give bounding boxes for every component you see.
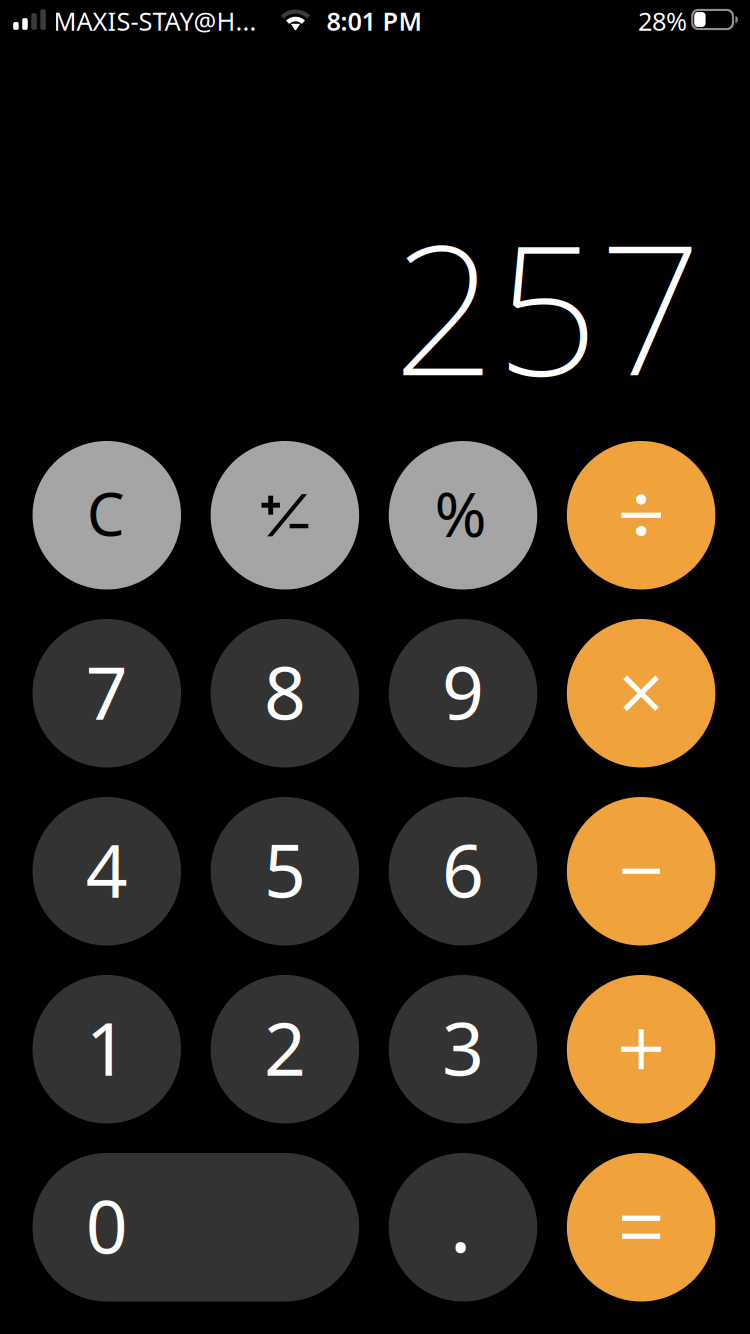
button[interactable]: 3 — [389, 975, 537, 1123]
staticText: . — [449, 1165, 471, 1275]
staticText: 9 — [442, 643, 484, 740]
button[interactable]: 8 — [211, 619, 359, 767]
button[interactable]: Minus — [567, 797, 715, 945]
button[interactable]: 0 — [32, 1153, 359, 1301]
staticText: 7 — [86, 643, 128, 740]
button[interactable]: 5 — [211, 797, 359, 945]
button[interactable]: 2 — [211, 975, 359, 1123]
button[interactable]: C — [33, 441, 181, 589]
button[interactable]: Multiply — [567, 619, 715, 767]
button[interactable]: Plus Minus — [211, 441, 359, 589]
staticText: 5 — [264, 821, 306, 918]
staticText: 8 — [264, 643, 306, 740]
button[interactable]: 6 — [389, 797, 537, 945]
staticText: 4 — [86, 821, 128, 918]
button[interactable]: . — [389, 1153, 537, 1301]
button[interactable]: Equals — [567, 1153, 715, 1301]
staticText: % — [434, 471, 486, 554]
button[interactable]: Plus — [567, 975, 715, 1123]
staticText: 6 — [442, 821, 484, 918]
staticText: 2 — [264, 999, 306, 1096]
staticText: 8:01 PM — [326, 4, 422, 38]
button[interactable]: 4 — [33, 797, 181, 945]
staticText: 257 — [393, 183, 702, 428]
staticText: 3 — [442, 999, 484, 1096]
button[interactable]: Divide — [567, 441, 715, 589]
staticText: MAXIS-STAY@H... — [53, 4, 256, 38]
button[interactable]: 1 — [33, 975, 181, 1123]
button[interactable]: 9 — [389, 619, 537, 767]
staticText: C — [87, 473, 125, 553]
staticText: 28% — [638, 4, 687, 38]
staticText: 0 — [86, 1177, 128, 1274]
button[interactable]: % — [389, 441, 537, 589]
staticText: 1 — [86, 999, 128, 1096]
button[interactable]: 7 — [33, 619, 181, 767]
